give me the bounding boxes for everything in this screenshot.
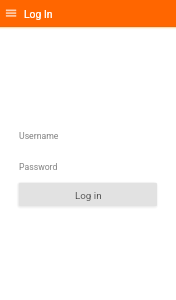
button[interactable]: Open navigation menu (2, 4, 20, 22)
staticText: Log In (24, 8, 53, 20)
button[interactable]: Username (19, 129, 157, 148)
staticText: Log in (75, 190, 102, 201)
staticText: Password (19, 162, 58, 172)
staticText: Username (19, 131, 59, 141)
button[interactable]: Log in (19, 183, 157, 206)
button[interactable]: Password (19, 160, 157, 179)
